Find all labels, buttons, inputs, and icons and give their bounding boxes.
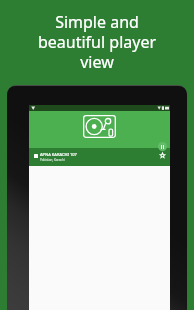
other: Now playing (83, 115, 116, 138)
staticText: Simple and beautiful player view (0, 11, 194, 72)
staticText: Pakistan, Karachi (40, 158, 65, 162)
button[interactable]: Favorite (160, 153, 165, 158)
button[interactable]: APNA KARACHI 107 (29, 148, 170, 166)
staticText: APNA KARACHI 107 (40, 152, 77, 157)
button[interactable]: Pause (158, 142, 167, 151)
